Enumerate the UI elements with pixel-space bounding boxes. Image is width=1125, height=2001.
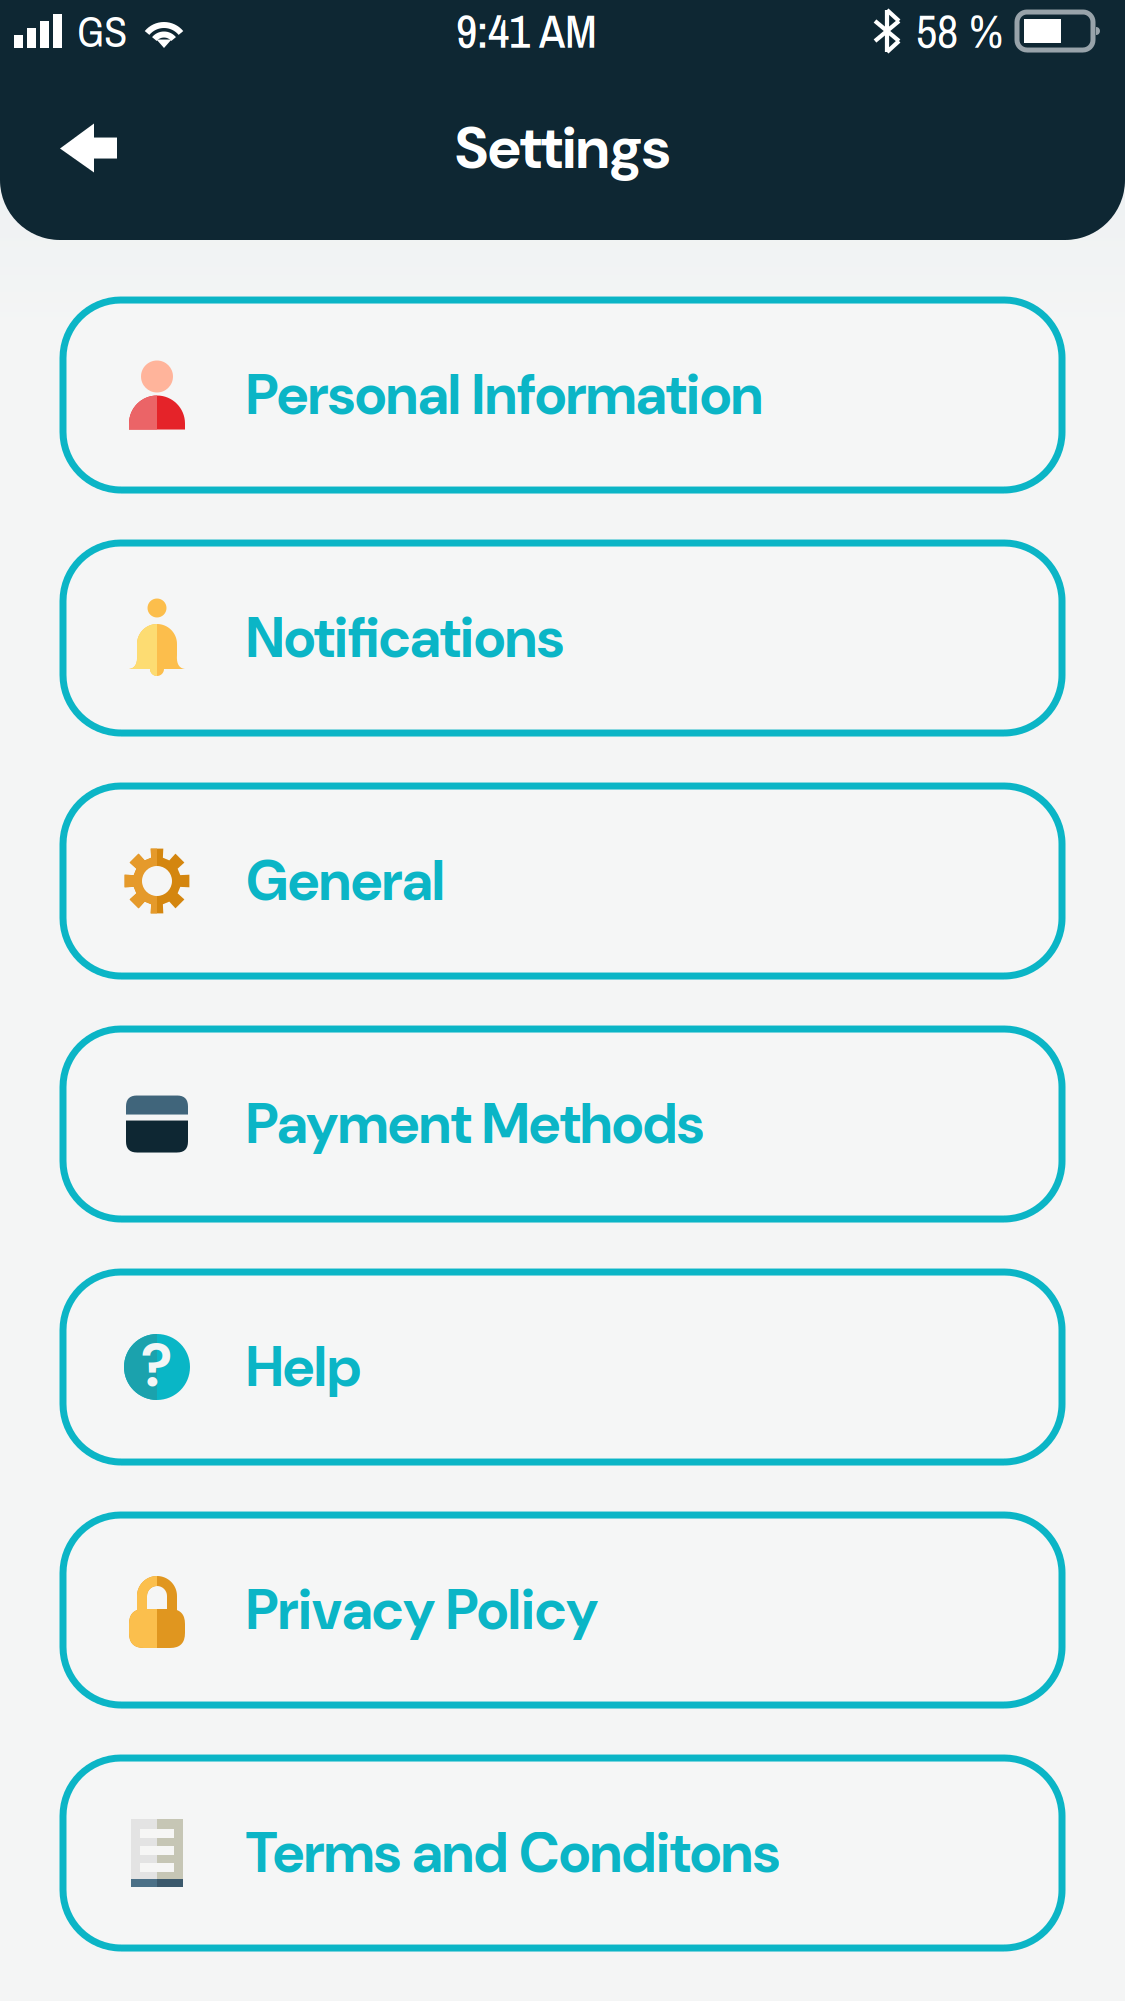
button[interactable]: Personal Information: [63, 300, 1062, 490]
button[interactable]: Privacy Policy: [63, 1515, 1062, 1705]
staticText: Terms and Conditons: [246, 1816, 780, 1889]
staticText: Privacy Policy: [246, 1573, 598, 1646]
button[interactable]: Terms and Conditons: [63, 1758, 1062, 1948]
staticText: Settings: [455, 110, 670, 186]
button[interactable]: Payment Methods: [63, 1029, 1062, 1219]
button[interactable]: General: [63, 786, 1062, 976]
button[interactable]: ?: [63, 1272, 1062, 1462]
staticText: 9:41 AM: [456, 0, 597, 62]
button[interactable]: Notifications: [63, 543, 1062, 733]
staticText: 58 %: [916, 0, 1003, 62]
staticText: Personal Information: [246, 358, 763, 431]
staticText: General: [246, 844, 445, 917]
staticText: Notifications: [246, 601, 564, 674]
staticText: GS: [77, 2, 127, 60]
staticText: ?: [141, 1327, 173, 1405]
staticText: Payment Methods: [246, 1087, 704, 1160]
button[interactable]: Back: [0, 96, 117, 200]
staticText: Help: [246, 1330, 361, 1403]
